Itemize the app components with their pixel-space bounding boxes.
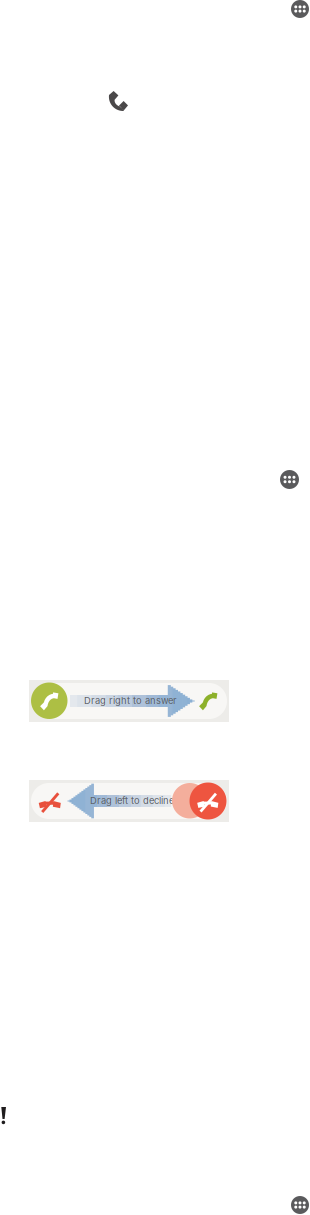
button[interactable]: Apps [280, 470, 299, 489]
button[interactable]: Drag right to answer [29, 680, 229, 722]
button[interactable]: Apps [291, 0, 309, 18]
staticText: Drag right to answer [84, 695, 177, 706]
button[interactable]: Apps [291, 1196, 309, 1214]
staticText: Drag left to decline [90, 795, 174, 806]
button[interactable]: Drag left to decline [29, 780, 229, 822]
